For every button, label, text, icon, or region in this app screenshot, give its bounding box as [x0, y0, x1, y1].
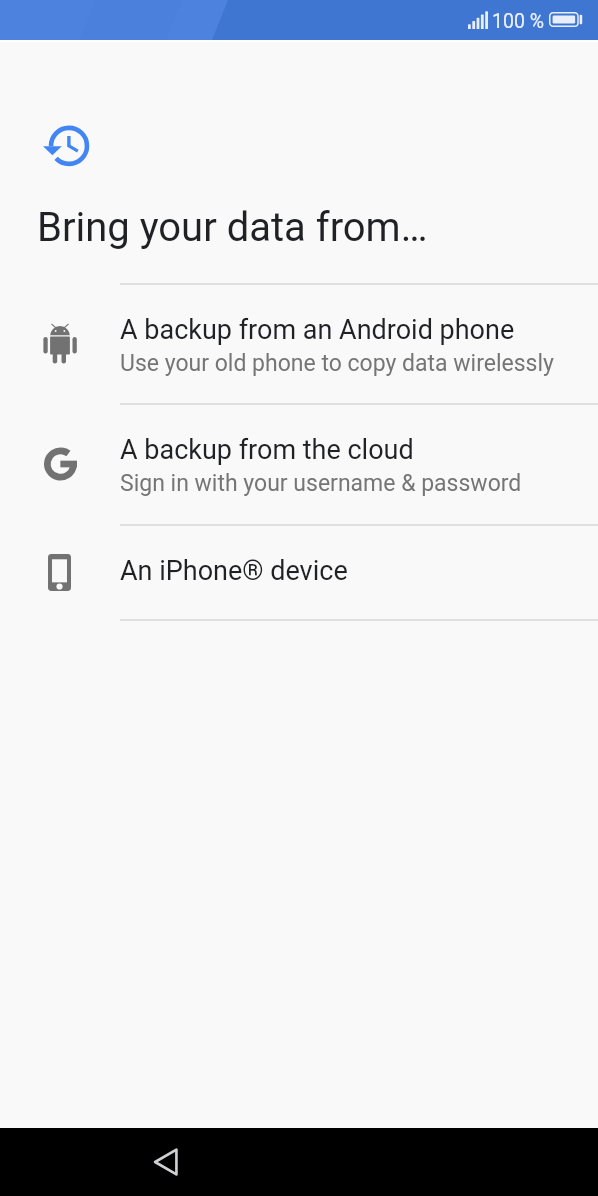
staticText: An iPhone® device	[120, 555, 348, 587]
button[interactable]	[0, 284, 598, 403]
button[interactable]	[0, 525, 598, 619]
staticText: Sign in with your username & password	[120, 470, 522, 497]
button[interactable]	[0, 404, 598, 524]
staticText: Use your old phone to copy data wireless…	[120, 350, 554, 377]
staticText: A backup from an Android phone	[120, 314, 515, 346]
staticText: 100 %	[492, 10, 544, 33]
staticText: A backup from the cloud	[120, 434, 414, 466]
staticText: Bring your data from…	[37, 204, 428, 251]
button[interactable]: Back	[140, 1137, 190, 1187]
